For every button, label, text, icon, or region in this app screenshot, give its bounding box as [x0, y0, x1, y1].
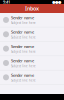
staticText: Subject line here	[11, 21, 36, 25]
staticText: Sender name	[11, 29, 34, 35]
staticText: Inbox	[25, 5, 39, 12]
staticText: Subject line here	[11, 79, 36, 82]
staticText: Sender name	[11, 15, 34, 20]
staticText: Subject line here	[11, 64, 36, 68]
staticText: Sender name	[11, 58, 34, 63]
staticText: 9:41	[3, 0, 10, 5]
staticText: ●●●	[52, 0, 61, 4]
staticText: Subject line here	[11, 36, 36, 39]
staticText: Sender name	[11, 72, 34, 78]
staticText: Subject line here	[11, 50, 36, 53]
staticText: Sender name	[11, 44, 34, 49]
